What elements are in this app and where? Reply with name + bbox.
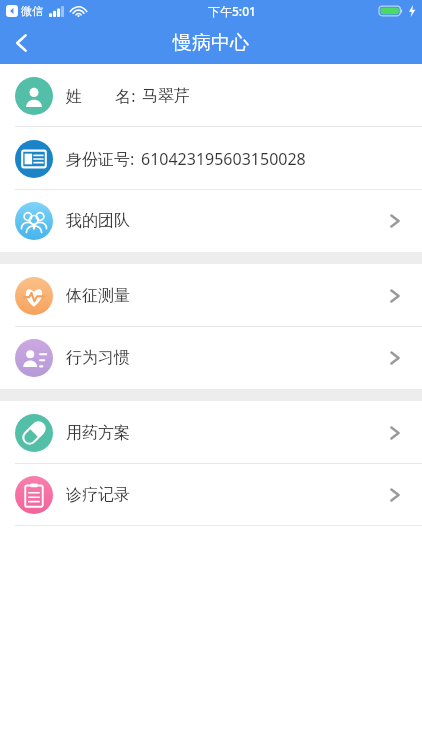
staticText: 用药方案	[66, 423, 130, 443]
button[interactable]: Back	[0, 22, 44, 64]
button[interactable]: ID card	[0, 127, 422, 190]
other: ID card	[15, 140, 53, 178]
button[interactable]: Treatment records	[0, 464, 422, 526]
staticText: 姓 名:	[66, 85, 136, 107]
other: My team	[15, 202, 53, 240]
other: Behaviour habits	[15, 339, 53, 377]
staticText: 下午5:01	[208, 3, 256, 19]
staticText: 610423195603150028	[141, 148, 306, 170]
other: Profile photo	[15, 77, 53, 115]
button[interactable]: Medication plan	[0, 401, 422, 464]
staticText: 我的团队	[66, 211, 130, 231]
button[interactable]: Behaviour habits	[0, 327, 422, 389]
staticText: 慢病中心	[173, 31, 249, 55]
staticText: 体征测量	[66, 286, 130, 306]
button[interactable]: Vital sign measurement	[0, 264, 422, 327]
staticText: 马翠芹	[142, 86, 190, 106]
other: Vital sign measurement	[15, 277, 53, 315]
button[interactable]: Profile photo	[0, 64, 422, 127]
button[interactable]: My team	[0, 190, 422, 252]
staticText: 诊疗记录	[66, 485, 130, 505]
other: Medication plan	[15, 414, 53, 452]
staticText: 微信	[21, 4, 43, 18]
staticText: 身份证号:	[66, 148, 135, 170]
staticText: 行为习惯	[66, 348, 130, 368]
other: Treatment records	[15, 476, 53, 514]
